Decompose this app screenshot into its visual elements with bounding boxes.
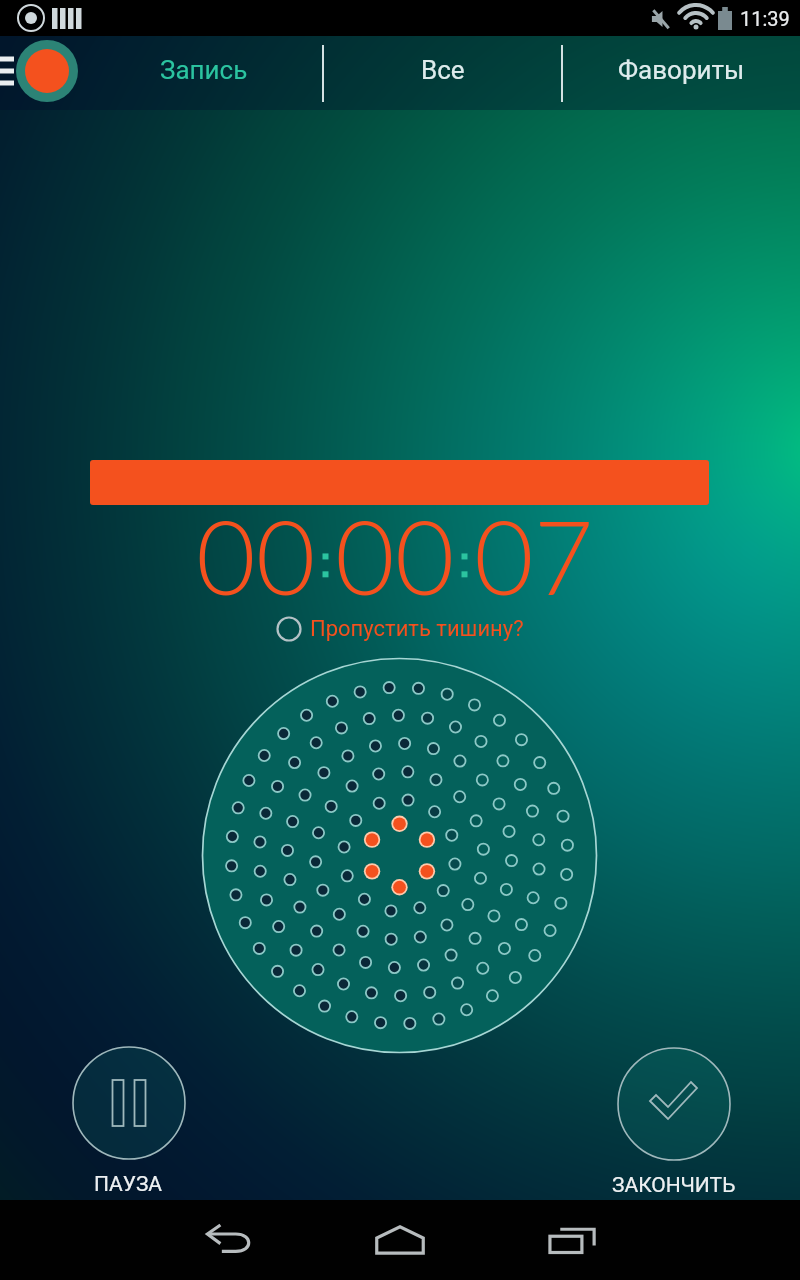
button[interactable]: Фавориты (563, 36, 800, 110)
staticText: Все (421, 55, 465, 85)
staticText: ПАУЗА (94, 1172, 163, 1197)
staticText: 07 (474, 493, 594, 617)
staticText: 00 (335, 493, 455, 617)
button[interactable]: Все (324, 36, 561, 110)
button[interactable]: Recents (528, 1208, 616, 1272)
staticText: Фавориты (618, 55, 745, 85)
staticText: Запись (160, 55, 248, 85)
button[interactable]: Запись (85, 36, 322, 110)
staticText: 00 (196, 493, 316, 617)
button[interactable]: Home (356, 1208, 444, 1272)
button[interactable]: Record (0, 36, 85, 110)
staticText: Пропустить тишину? (310, 616, 524, 642)
staticText: ЗАКОНЧИТЬ (612, 1173, 736, 1198)
button[interactable]: Пропустить тишину? (276, 616, 524, 642)
button[interactable]: ЗАКОНЧИТЬ (563, 1047, 784, 1198)
button[interactable]: Back (186, 1208, 274, 1272)
staticText: 11:39 (740, 7, 790, 30)
button[interactable]: ПАУЗА (18, 1046, 239, 1197)
